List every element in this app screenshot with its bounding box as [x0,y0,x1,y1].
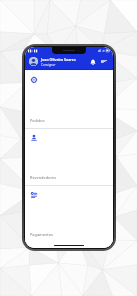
staticText: Pagamentos [30,232,53,237]
button[interactable]: Foto do perfil [29,57,38,66]
button[interactable]: Revendedores [25,129,113,185]
staticText: Joao Oliveira Soares [41,57,76,62]
button[interactable]: Pedidos [25,71,113,128]
button[interactable]: Pagamentos [25,186,113,242]
button[interactable]: Menu [99,57,109,67]
button[interactable]: Notificações [88,57,98,67]
staticText: Consignar [41,63,56,67]
staticText: Revendedores [30,175,57,180]
staticText: Pedidos [30,118,45,123]
